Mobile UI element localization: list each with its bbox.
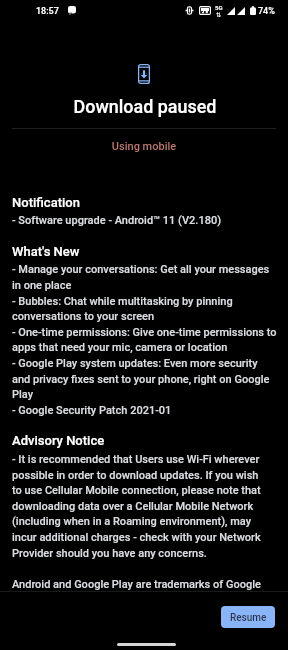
staticText: 5G bbox=[215, 4, 223, 11]
staticText: - One-time permissions: Give one-time pe… bbox=[12, 326, 277, 339]
staticText: 18:57 bbox=[36, 6, 59, 17]
staticText: - Bubbles: Chat while multitasking by pi… bbox=[12, 295, 233, 308]
staticText: ⇅ bbox=[216, 11, 222, 18]
staticText: What's New bbox=[12, 244, 80, 259]
staticText: Download paused bbox=[1, 96, 288, 117]
other: Software update download bbox=[0, 64, 288, 84]
staticText: (including when in a Roaming environment… bbox=[12, 515, 252, 528]
staticText: downloading data over a Cellular Mobile … bbox=[12, 500, 254, 513]
staticText: Advisory Notice bbox=[12, 433, 105, 448]
staticText: Provider should you have any concerns. bbox=[12, 547, 207, 560]
staticText: to use Cellular Mobile connection, pleas… bbox=[12, 484, 261, 497]
staticText: and privacy fixes sent to your phone, ri… bbox=[12, 373, 270, 386]
staticText: Android and Google Play are trademarks o… bbox=[12, 578, 261, 591]
button[interactable]: Resume bbox=[221, 606, 275, 628]
staticText: Using mobile bbox=[0, 140, 288, 153]
staticText: 74% bbox=[258, 6, 275, 17]
staticText: - Manage your conversations: Get all you… bbox=[12, 263, 270, 276]
staticText: apps that need your mic, camera or locat… bbox=[12, 341, 228, 354]
staticText: - Software upgrade - Android™ 11 (V2.180… bbox=[12, 214, 222, 227]
staticText: conversations to your screen bbox=[12, 310, 155, 323]
staticText: Play bbox=[12, 388, 34, 401]
staticText: - Google Play system updates: Even more … bbox=[12, 357, 258, 370]
staticText: Notification bbox=[12, 195, 80, 210]
staticText: - It is recommended that Users use Wi-Fi… bbox=[12, 453, 260, 466]
staticText: incur additional charges - check with yo… bbox=[12, 531, 261, 544]
staticText: - Google Security Patch 2021-01 bbox=[12, 404, 172, 417]
staticText: Resume bbox=[230, 612, 267, 624]
staticText: possible in order to download updates. I… bbox=[12, 469, 259, 482]
staticText: in one place bbox=[12, 279, 72, 292]
